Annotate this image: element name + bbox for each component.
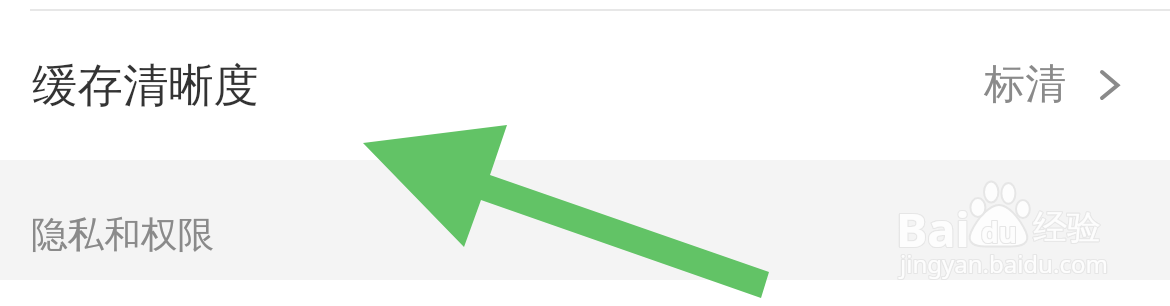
staticText: 经验 xyxy=(1033,206,1101,249)
staticText: du xyxy=(981,213,1017,251)
staticText: 隐私和权限 xyxy=(31,212,214,258)
staticText: 缓存清晰度 xyxy=(32,57,259,114)
staticText: jingyan.baidu.com xyxy=(900,247,1108,280)
staticText: Bai xyxy=(896,197,970,261)
staticText: du xyxy=(981,213,1017,251)
staticText: jingyan.baidu.com xyxy=(900,247,1108,280)
other: Open 缓存清晰度 xyxy=(1098,68,1122,102)
staticText: Bai xyxy=(896,197,970,261)
staticText: 标清 xyxy=(984,59,1066,111)
staticText: 经验 xyxy=(1033,206,1101,249)
button[interactable]: 缓存清晰度 xyxy=(0,11,1170,160)
